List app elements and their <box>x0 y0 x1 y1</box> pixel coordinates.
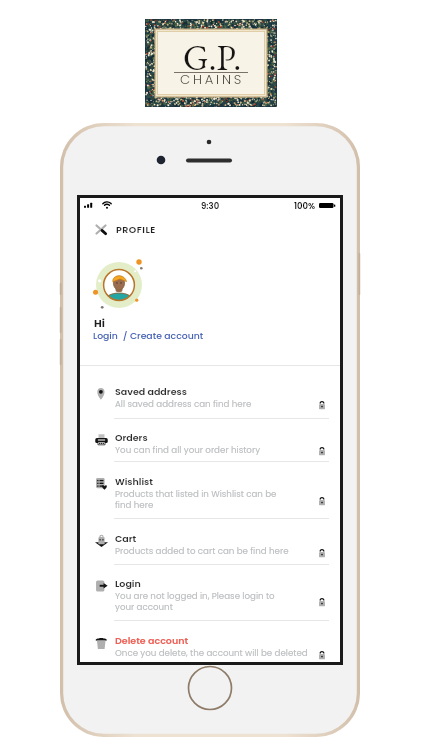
staticText: Wishlist <box>115 475 153 488</box>
button[interactable]: Cart <box>80 519 340 564</box>
staticText: Products that listed in Wishlist can be … <box>115 488 277 511</box>
staticText: All saved address can find here <box>115 398 252 410</box>
staticText: You can find all your order history <box>115 444 261 456</box>
other: Close <box>95 224 107 235</box>
staticText: You are not logged in, Please login to y… <box>115 590 275 613</box>
staticText: Orders <box>115 431 148 444</box>
button[interactable]: Saved address <box>80 366 340 418</box>
staticText: G.P. <box>183 35 242 81</box>
staticText: Products added to cart can be find here <box>115 545 289 557</box>
staticText: Saved address <box>115 385 187 398</box>
staticText: 100% <box>294 200 316 212</box>
staticText: Hi <box>94 316 105 331</box>
staticText: PROFILE <box>116 223 156 236</box>
staticText: CHAINS <box>180 70 245 88</box>
button[interactable]: Close <box>80 220 340 239</box>
staticText: Cart <box>115 532 137 545</box>
button[interactable]: Login / Create account <box>93 329 204 342</box>
button[interactable]: Delete account <box>80 621 340 665</box>
staticText: Login <box>115 577 141 590</box>
button[interactable]: Wishlist <box>80 462 340 518</box>
button[interactable]: Login <box>80 565 340 620</box>
staticText: Once you delete, the account will be del… <box>115 647 308 659</box>
staticText: 9:30 <box>201 200 220 212</box>
button[interactable]: Orders <box>80 419 340 461</box>
staticText: Delete account <box>115 634 189 647</box>
staticText: Login / Create account <box>93 329 204 342</box>
